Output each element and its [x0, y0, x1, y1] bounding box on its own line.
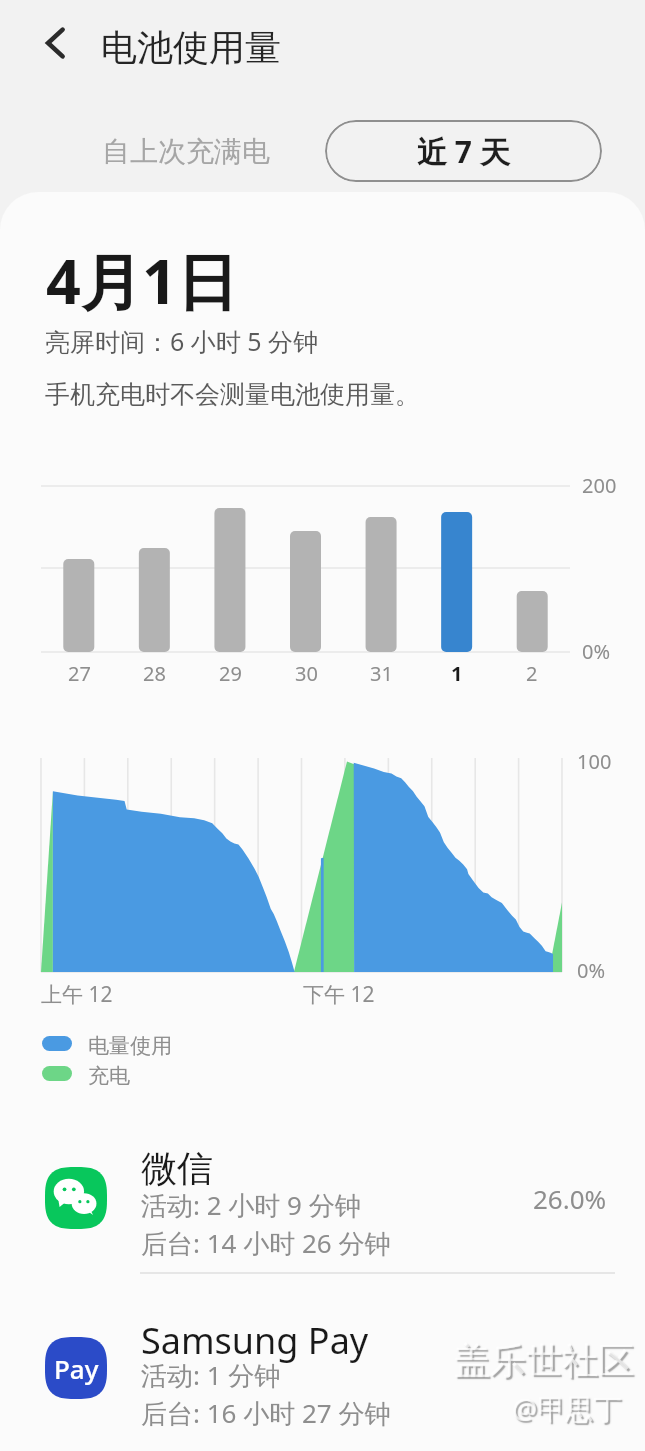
button[interactable]: 自上次充满电 [88, 120, 283, 182]
staticText: 31 [370, 660, 393, 687]
staticText: 27 [68, 660, 91, 687]
staticText: 后台: 14 小时 26 分钟 [141, 1225, 391, 1261]
staticText: 28 [143, 660, 166, 687]
button[interactable]: Back [30, 20, 82, 66]
staticText: 200 [582, 472, 617, 499]
staticText: 26.0% [533, 1181, 607, 1216]
staticText: 30 [295, 660, 318, 687]
staticText: Pay [54, 1351, 99, 1386]
button[interactable]: Pay [0, 1311, 645, 1441]
staticText: Samsung Pay [141, 1316, 369, 1365]
staticText: 2 [526, 660, 538, 687]
button[interactable]: 近 7 天 [325, 120, 602, 182]
staticText: 0% [582, 638, 611, 665]
staticText: 1 [451, 660, 463, 687]
staticText: 活动: 1 分钟 [141, 1357, 281, 1393]
staticText: 自上次充满电 [102, 134, 270, 169]
staticText: 近 7 天 [417, 131, 510, 172]
staticText: 盖乐世社区 [454, 1338, 634, 1383]
staticText: 29 [219, 660, 242, 687]
staticText: 4月1日 [46, 239, 238, 322]
staticText: @甲思丁 [512, 1389, 622, 1427]
staticText: 亮屏时间：6 小时 5 分钟 [45, 324, 319, 358]
staticText: 电池使用量 [101, 25, 281, 70]
staticText: 手机充电时不会测量电池使用量。 [45, 379, 420, 410]
button[interactable]: 微信 [0, 1141, 645, 1271]
staticText: 100 [577, 748, 612, 775]
staticText: 0% [577, 957, 606, 984]
staticText: 微信 [141, 1146, 213, 1191]
staticText: 电量使用 [88, 1033, 172, 1059]
staticText: 后台: 16 小时 27 分钟 [141, 1395, 391, 1431]
staticText: 活动: 2 小时 9 分钟 [141, 1187, 361, 1223]
staticText: 充电 [88, 1063, 130, 1089]
staticText: 下午 12 [303, 980, 375, 1009]
staticText: 上午 12 [41, 980, 113, 1009]
